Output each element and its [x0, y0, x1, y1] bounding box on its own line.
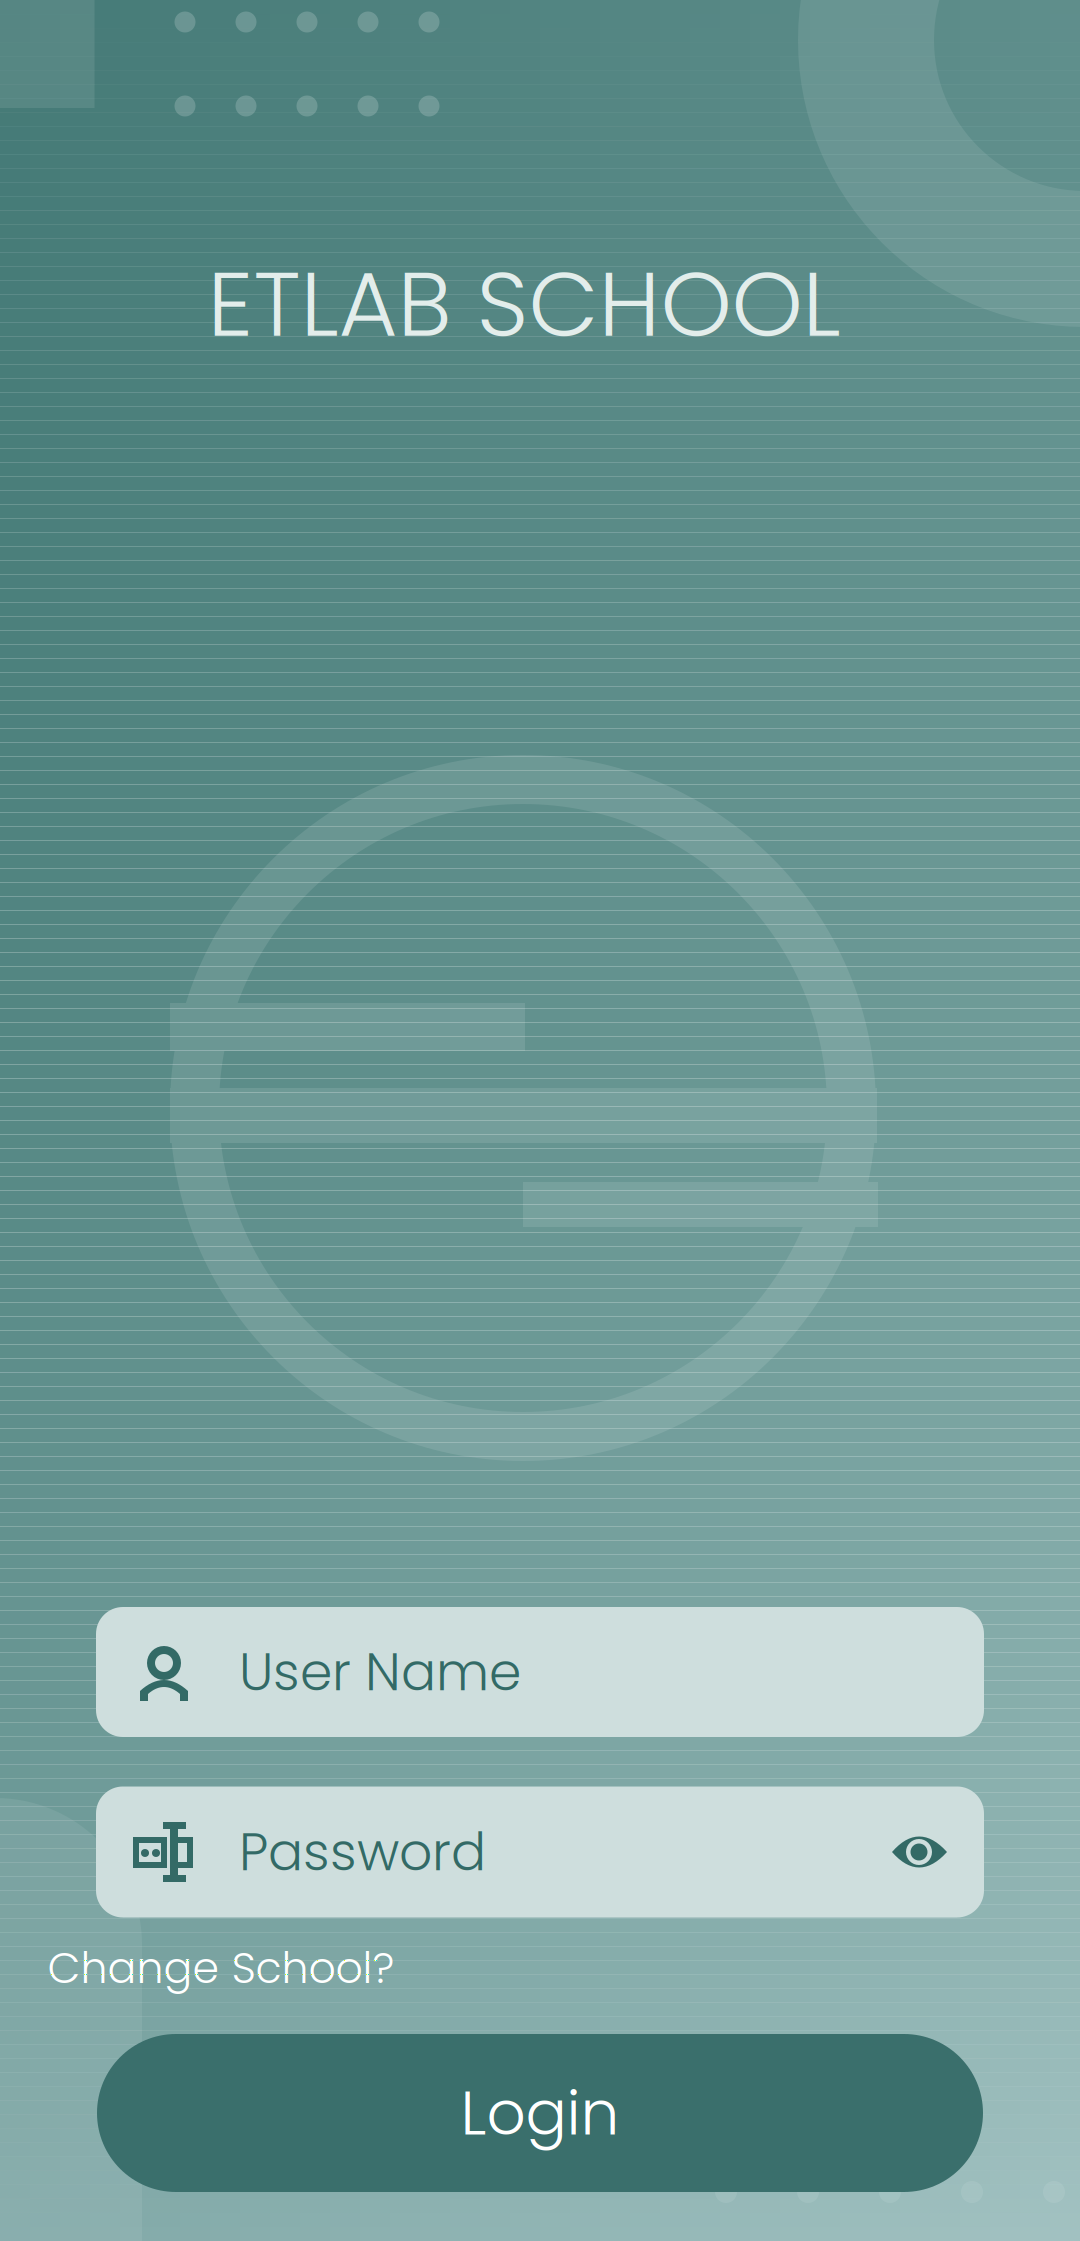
staticText: ETLAB SCHOOL [207, 240, 840, 367]
button[interactable]: Login [97, 2034, 983, 2192]
staticText: User Name [239, 1636, 521, 1708]
staticText: Change School? [47, 1938, 394, 1998]
staticText: Login [460, 2070, 619, 2156]
staticText: Password [239, 1816, 486, 1888]
button[interactable]: Change School? [43, 1928, 398, 2008]
